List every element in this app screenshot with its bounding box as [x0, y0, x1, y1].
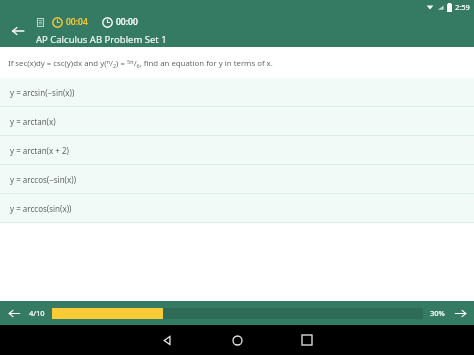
- staticText: If sec(x)dy = csc(y)dx and y(π/2) = 5π/6…: [8, 58, 273, 69]
- staticText: 00:04: [66, 16, 88, 28]
- button[interactable]: Recents: [290, 325, 324, 355]
- staticText: y = arctan(x + 2): [10, 145, 69, 156]
- staticText: AP Calculus AB Problem Set 1: [36, 33, 167, 46]
- button[interactable]: y = arccos(sin(x)): [0, 194, 474, 222]
- staticText: y = arccos(sin(x)): [10, 203, 72, 214]
- button[interactable]: y = arctan(x): [0, 107, 474, 135]
- button[interactable]: Home: [220, 325, 254, 355]
- button[interactable]: Next: [452, 305, 468, 321]
- staticText: y = arctan(x): [10, 116, 56, 127]
- button[interactable]: y = arctan(x + 2): [0, 136, 474, 164]
- button[interactable]: y = arccos(−sin(x)): [0, 165, 474, 193]
- staticText: y = arcsin(−sin(x)): [10, 87, 75, 98]
- staticText: 30%: [430, 308, 445, 318]
- button[interactable]: Back: [3, 16, 33, 46]
- staticText: 4/10: [29, 308, 45, 318]
- button[interactable]: Back: [150, 325, 184, 355]
- button[interactable]: y = arcsin(−sin(x)): [0, 78, 474, 106]
- staticText: 00:00: [116, 16, 138, 28]
- button[interactable]: Previous: [6, 305, 22, 321]
- staticText: y = arccos(−sin(x)): [10, 174, 77, 185]
- staticText: 2:59: [455, 2, 470, 12]
